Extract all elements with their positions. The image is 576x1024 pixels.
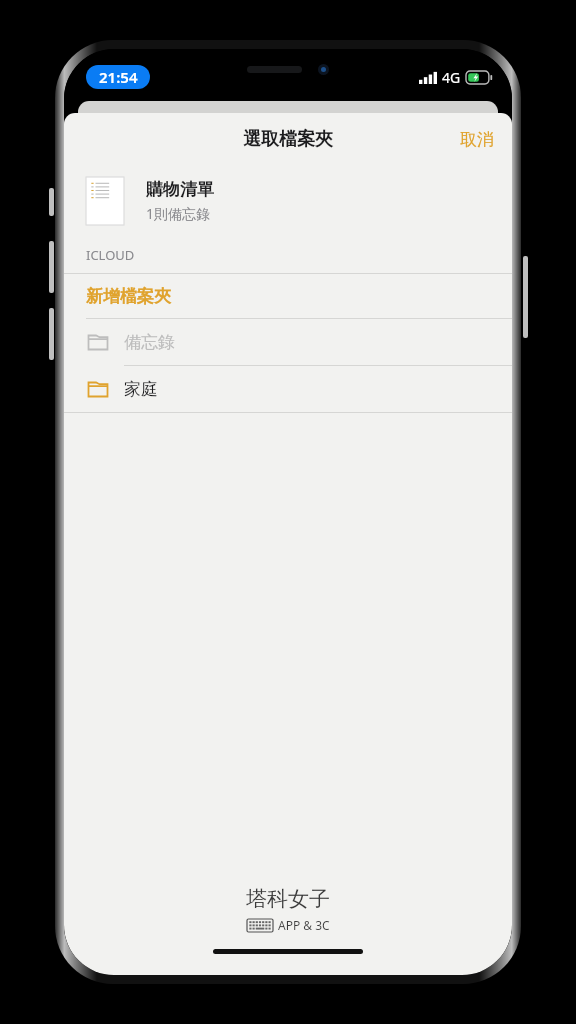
staticText: 家庭 [124, 379, 158, 400]
staticText: 選取檔案夾 [243, 128, 333, 151]
button[interactable]: 取消 [442, 119, 512, 160]
staticText: 1則備忘錄 [146, 204, 211, 223]
staticText: 取消 [460, 129, 494, 150]
staticText: 塔科女子 [246, 886, 330, 912]
button[interactable]: 新增檔案夾 [64, 274, 512, 318]
button[interactable]: 購物清單 [64, 165, 512, 237]
staticText: 備忘錄 [124, 332, 175, 353]
staticText: 新增檔案夾 [86, 286, 171, 307]
staticText: 21:54 [99, 67, 138, 87]
button[interactable]: 家庭 [64, 366, 512, 412]
staticText: APP & 3C [278, 917, 330, 933]
staticText: ICLOUD [86, 246, 135, 264]
staticText: 4G [442, 68, 461, 87]
staticText: 購物清單 [146, 179, 214, 200]
button[interactable]: 備忘錄 [64, 319, 512, 365]
